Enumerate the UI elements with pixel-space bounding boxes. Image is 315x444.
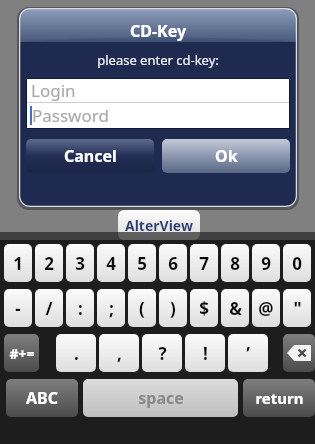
button[interactable]: $ (190, 289, 218, 327)
staticText: 4 (106, 252, 116, 275)
staticText: . (74, 342, 79, 365)
staticText: return (255, 388, 304, 408)
button[interactable]: 1 (4, 244, 32, 282)
staticText: space (138, 387, 184, 409)
staticText: $ (199, 297, 209, 320)
button[interactable]: 6 (159, 244, 187, 282)
staticText: AlterView (125, 216, 193, 235)
staticText: 7 (199, 252, 209, 275)
button[interactable]: Cancel (26, 139, 154, 173)
staticText: ( (139, 297, 145, 320)
button[interactable]: / (35, 289, 63, 327)
staticText: ; (109, 297, 114, 320)
button[interactable]: Ok (162, 139, 290, 173)
button[interactable]: " (283, 289, 311, 327)
button[interactable]: ; (97, 289, 125, 327)
button[interactable]: #+= (4, 334, 39, 372)
staticText: 1 (13, 252, 23, 275)
staticText: Cancel (64, 145, 117, 167)
button[interactable]: AlterView (118, 210, 200, 240)
button[interactable]: 2 (35, 244, 63, 282)
button[interactable]: 4 (97, 244, 125, 282)
staticText: Password (32, 104, 109, 127)
button[interactable]: ’ (228, 334, 268, 372)
button[interactable]: 3 (66, 244, 94, 282)
button[interactable]: . (56, 334, 96, 372)
button[interactable]: & (221, 289, 249, 327)
staticText: @ (258, 297, 274, 320)
button[interactable]: @ (252, 289, 280, 327)
staticText: : (78, 297, 83, 320)
staticText: ! (203, 342, 208, 365)
button[interactable]: 9 (252, 244, 280, 282)
staticText: ABC (26, 387, 58, 409)
button[interactable]: space (83, 379, 238, 417)
staticText: / (45, 297, 53, 320)
staticText: 5 (137, 252, 147, 275)
staticText: #+= (9, 344, 35, 363)
staticText: Ok (215, 145, 238, 167)
staticText: 6 (168, 252, 178, 275)
button[interactable]: 8 (221, 244, 249, 282)
staticText: ? (158, 342, 167, 365)
staticText: ’ (246, 342, 250, 365)
button[interactable]: , (99, 334, 139, 372)
staticText: 2 (44, 252, 54, 275)
staticText: & (229, 297, 242, 320)
staticText: - (15, 297, 21, 320)
staticText: please enter cd-key: (19, 51, 297, 69)
button[interactable]: ? (142, 334, 182, 372)
staticText: " (293, 297, 302, 320)
staticText: Login (31, 79, 76, 102)
staticText: 0 (292, 252, 302, 275)
staticText: CD-Key (19, 20, 297, 42)
button[interactable]: Login (27, 79, 289, 102)
button[interactable]: return (243, 379, 315, 417)
button[interactable]: ! (185, 334, 225, 372)
staticText: 8 (230, 252, 240, 275)
button[interactable]: 5 (128, 244, 156, 282)
button[interactable]: 7 (190, 244, 218, 282)
button[interactable]: - (4, 289, 32, 327)
staticText: 9 (261, 252, 271, 275)
button[interactable]: Password (27, 103, 289, 128)
button[interactable]: Backspace (283, 334, 315, 372)
staticText: , (117, 342, 122, 365)
button[interactable]: : (66, 289, 94, 327)
staticText: 3 (75, 252, 85, 275)
staticText: ) (170, 297, 176, 320)
button[interactable]: ( (128, 289, 156, 327)
button[interactable]: 0 (283, 244, 311, 282)
button[interactable]: ) (159, 289, 187, 327)
button[interactable]: ABC (6, 379, 78, 417)
